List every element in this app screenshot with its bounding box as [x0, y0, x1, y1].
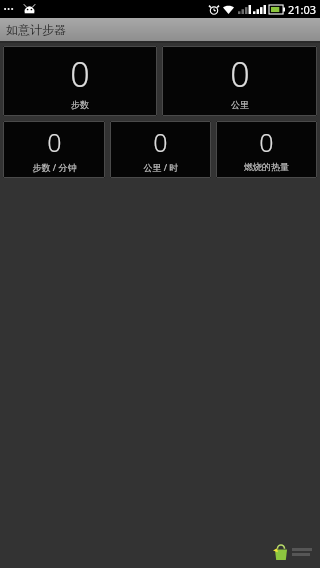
staticText: 步数	[71, 99, 89, 110]
staticText: 21:03	[288, 2, 317, 17]
staticText: 0	[230, 51, 250, 97]
button[interactable]: 0	[216, 121, 317, 178]
staticText: 公里	[231, 99, 249, 110]
button[interactable]: 0	[162, 46, 317, 116]
staticText: 步数 / 分钟	[32, 161, 77, 173]
other: Market	[273, 544, 289, 560]
button[interactable]: 0	[3, 46, 157, 116]
staticText: 0	[153, 125, 168, 159]
staticText: 0	[70, 51, 90, 97]
button[interactable]: 0	[110, 121, 211, 178]
staticText: 燃烧的热量	[244, 161, 289, 172]
button[interactable]: 0	[3, 121, 105, 178]
staticText: 公里 / 时	[143, 161, 179, 173]
staticText: 如意计步器	[6, 22, 66, 37]
staticText: 0	[259, 125, 274, 159]
staticText: 0	[47, 125, 62, 159]
